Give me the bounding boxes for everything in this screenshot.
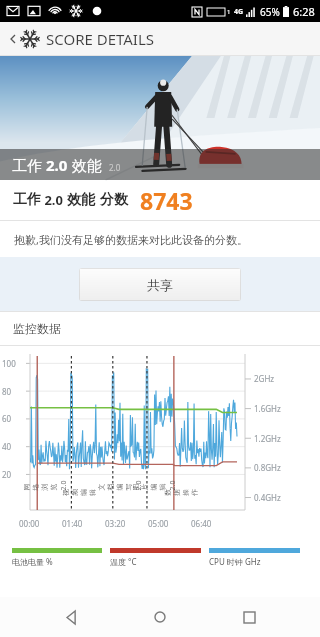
staticText: 4G [234,7,244,17]
staticText: 数据操作 [163,484,199,496]
staticText: 视频编辑 [61,484,97,496]
staticText: 65% [260,5,280,19]
staticText: 0.8GHz [254,462,281,473]
staticText: 分数 [100,191,128,209]
staticText: 网络浏览 2.0 [21,478,68,490]
staticText: 01:40 [62,518,83,529]
staticText: 共享 [147,277,173,293]
staticText: 8743 [140,185,193,216]
staticText: 80 [2,386,12,397]
staticText: CPU 时钟 GHz [209,556,261,567]
staticText: 60 [2,413,12,424]
staticText: 图片编辑 2.0 [130,478,177,490]
staticText: 抱歉,我们没有足够的数据来对比此设备的分数。 [14,232,248,247]
staticText: 20 [2,469,12,480]
staticText: 效能 [67,191,95,209]
staticText: 1.2GHz [254,433,281,444]
staticText: 工作 [12,155,46,175]
staticText: 06:40 [191,518,212,529]
staticText: 工作 [13,191,41,209]
staticText: 效能 [68,155,102,175]
staticText: 1.6GHz [254,403,281,414]
staticText: 2.0 [109,162,121,173]
staticText: SCORE DETAILS [46,29,155,49]
staticText: 6:28 [293,4,315,19]
staticText: 00:00 [19,518,40,529]
staticText: 电池电量 % [12,556,53,567]
staticText: 文档编写 2.0 [96,478,143,490]
staticText: 0.4GHz [254,492,281,503]
staticText: 2.0 [41,191,67,209]
button[interactable]: Back [53,599,89,635]
staticText: 03:20 [105,518,126,529]
staticText: 温度 °C [110,556,137,567]
staticText: 1 [227,8,231,16]
staticText: 2.0 [46,155,68,175]
button[interactable]: 共享 [79,268,241,301]
staticText: 监控数据 [13,321,61,336]
staticText: 2GHz [254,373,275,384]
button[interactable]: Back [5,31,21,47]
staticText: 100 [2,358,16,369]
button[interactable]: Home [142,599,178,635]
staticText: 40 [2,441,12,452]
button[interactable]: Recents [231,599,267,635]
staticText: 05:00 [148,518,169,529]
